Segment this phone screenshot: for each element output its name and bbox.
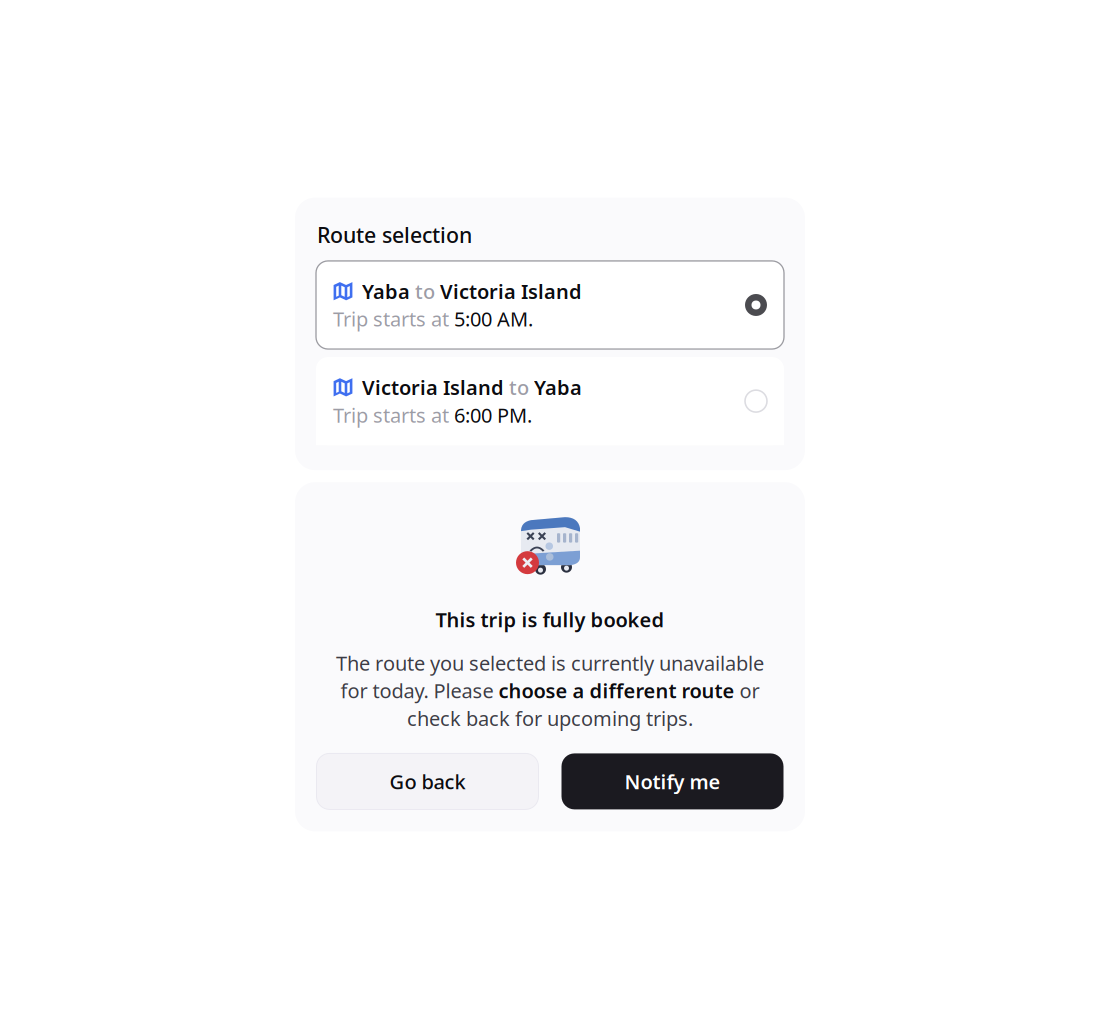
- staticText: check back for upcoming trips.: [407, 705, 693, 731]
- staticText: Trip starts at: [333, 402, 454, 428]
- button[interactable]: Victoria Island to Yaba, trip starts at …: [316, 357, 784, 445]
- staticText: Victoria Island: [362, 374, 504, 401]
- staticText: Go back: [389, 768, 465, 795]
- button[interactable]: Yaba to Victoria Island, trip starts at …: [316, 261, 784, 349]
- staticText: 5:00 AM.: [454, 305, 533, 332]
- staticText: 6:00 PM.: [454, 402, 532, 428]
- staticText: Yaba: [534, 374, 582, 401]
- button[interactable]: Notify me: [561, 753, 783, 809]
- staticText: This trip is fully booked: [435, 606, 664, 633]
- staticText: to: [410, 278, 440, 304]
- staticText: Notify me: [624, 768, 720, 795]
- staticText: The route you selected is currently unav…: [336, 650, 764, 676]
- staticText: or: [734, 677, 759, 704]
- staticText: Trip starts at: [333, 305, 454, 332]
- staticText: Route selection: [317, 221, 472, 249]
- button[interactable]: Go back: [316, 753, 538, 809]
- staticText: Victoria Island: [440, 278, 582, 304]
- staticText: to: [504, 374, 534, 401]
- staticText: for today. Please: [340, 677, 498, 704]
- staticText: Yaba: [362, 278, 410, 304]
- staticText: choose a different route: [498, 677, 734, 704]
